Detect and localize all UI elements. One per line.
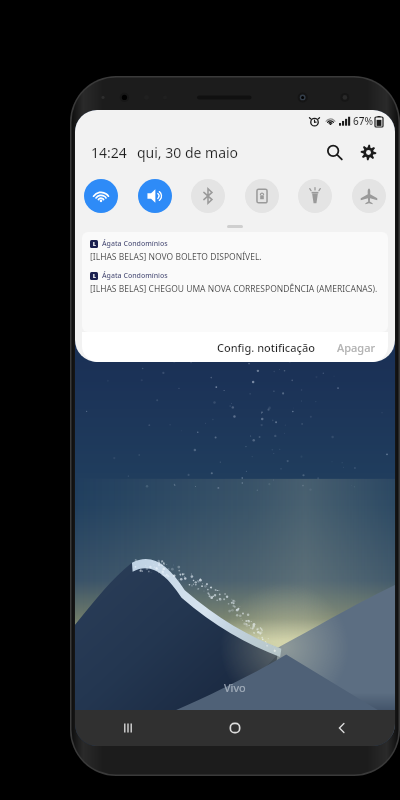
button[interactable]: Voltar xyxy=(288,710,395,746)
button[interactable]: L xyxy=(82,270,388,296)
staticText: [ILHAS BELAS] NOVO BOLETO DISPONÍVEL. xyxy=(90,251,380,263)
staticText: Ágata Condomínios xyxy=(102,239,168,249)
button[interactable]: Modo avião xyxy=(352,179,386,213)
staticText: Config. notificação xyxy=(217,340,315,355)
button[interactable]: Bluetooth xyxy=(191,179,225,213)
button[interactable]: Apagar xyxy=(329,336,384,359)
button[interactable]: Bloqueio automático xyxy=(245,179,279,213)
button[interactable]: Som xyxy=(138,179,172,213)
staticText: qui, 30 de maio xyxy=(137,143,239,162)
staticText: [ILHAS BELAS] CHEGOU UMA NOVA CORRESPOND… xyxy=(90,283,380,295)
staticText: L xyxy=(93,273,96,280)
button[interactable]: Início xyxy=(181,710,288,746)
staticText: L xyxy=(93,241,96,248)
button[interactable]: Config. notificação xyxy=(209,336,323,359)
staticText: Vivo xyxy=(224,680,246,695)
button[interactable]: Pesquisar xyxy=(319,137,349,167)
staticText: Ágata Condomínios xyxy=(102,271,168,281)
button[interactable]: Configurações xyxy=(353,137,383,167)
button[interactable]: Recentes xyxy=(75,710,181,746)
staticText: 67% xyxy=(353,114,373,128)
button[interactable]: L xyxy=(82,238,388,264)
staticText: 14:24 xyxy=(91,143,127,162)
button[interactable]: Wi-Fi xyxy=(84,179,118,213)
button[interactable]: Lanterna xyxy=(298,179,332,213)
staticText: Apagar xyxy=(337,340,376,355)
